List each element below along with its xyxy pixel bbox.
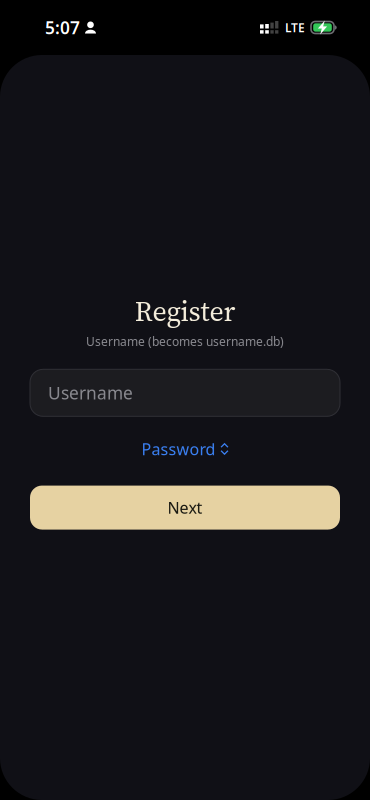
staticText: Password xyxy=(142,438,216,459)
staticText: Register xyxy=(134,292,235,330)
staticText: Username (becomes username.db) xyxy=(86,333,284,349)
staticText: Username xyxy=(48,381,133,404)
staticText: LTE xyxy=(285,19,305,35)
button[interactable]: Next xyxy=(30,486,340,530)
staticText: Next xyxy=(167,497,202,518)
button[interactable]: Password xyxy=(132,433,238,464)
staticText: 5:07 xyxy=(45,16,80,39)
